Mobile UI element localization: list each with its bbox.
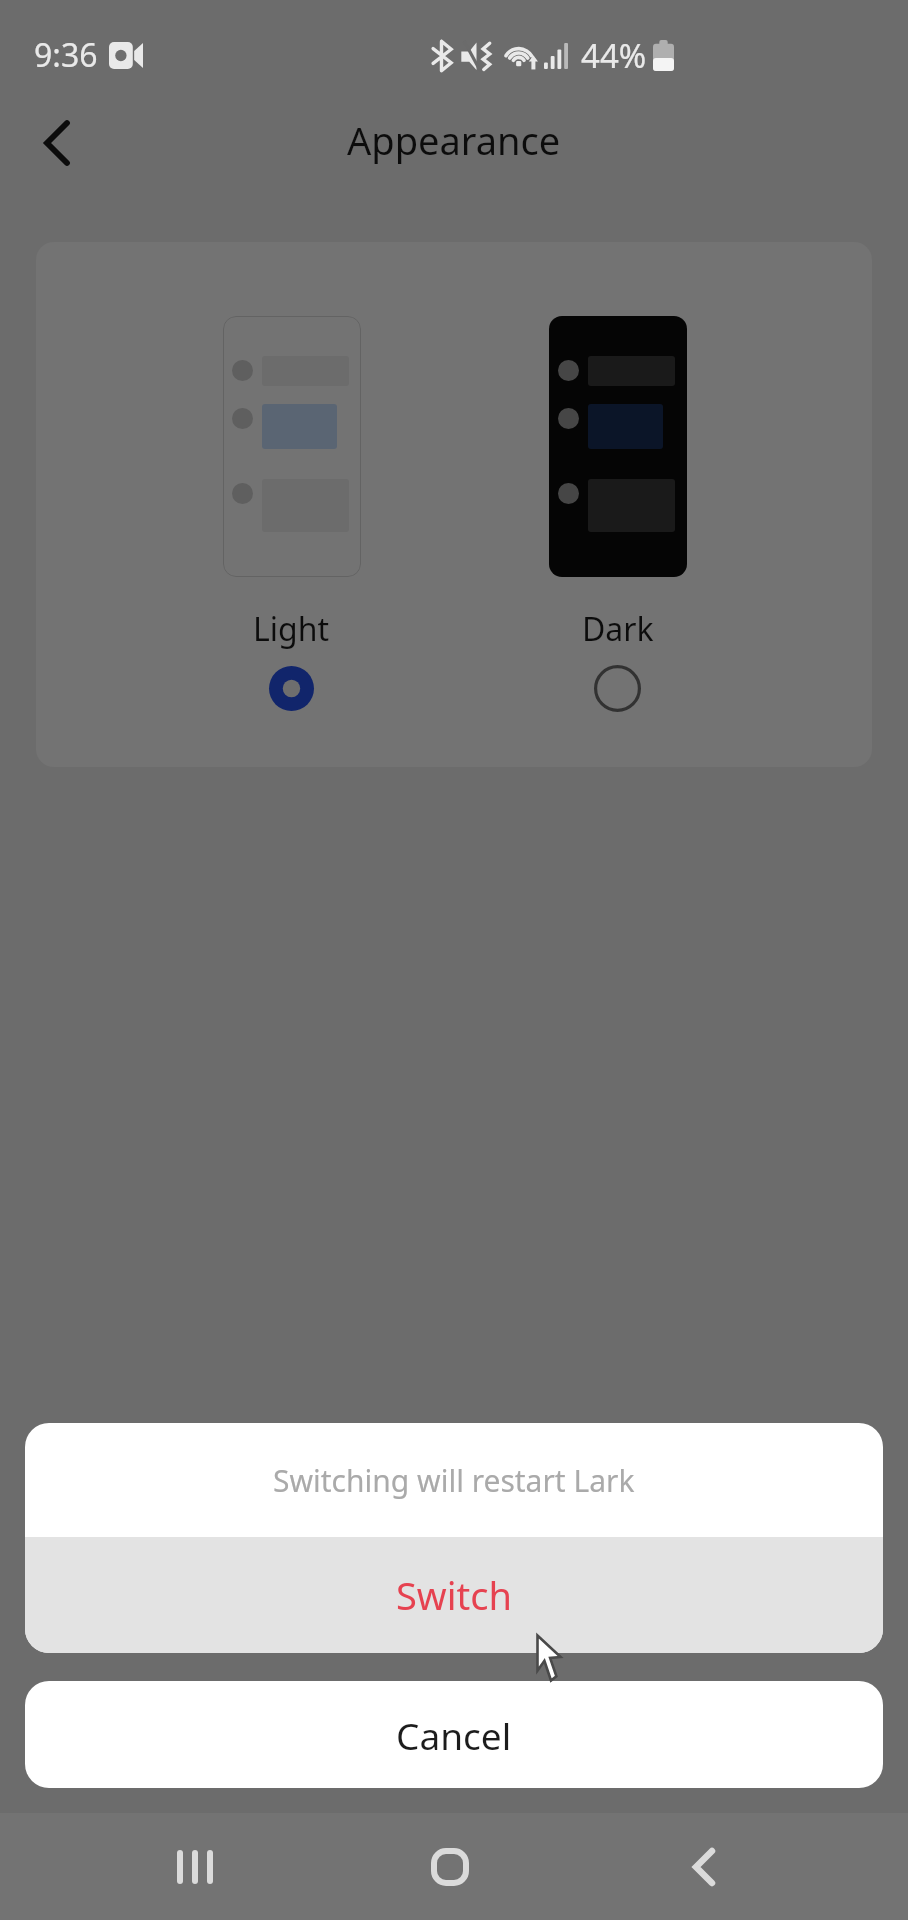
staticText: Appearance [347, 114, 561, 166]
staticText: Switching will restart Lark [273, 1460, 635, 1501]
button[interactable]: Home [396, 1813, 504, 1920]
button[interactable]: Switch [25, 1537, 883, 1653]
staticText: 44% [581, 33, 647, 78]
button[interactable]: Back [650, 1813, 758, 1920]
button[interactable]: Dark [498, 242, 737, 767]
staticText: Cancel [396, 1710, 512, 1760]
staticText: 9:36 [34, 33, 98, 77]
staticText: Light [253, 607, 330, 651]
button[interactable]: Back [19, 105, 95, 181]
button[interactable]: Light [172, 242, 411, 767]
staticText: Switch [396, 1569, 512, 1621]
staticText: Dark [582, 607, 654, 651]
button[interactable]: Recents [141, 1813, 249, 1920]
button[interactable]: Cancel [25, 1681, 883, 1788]
